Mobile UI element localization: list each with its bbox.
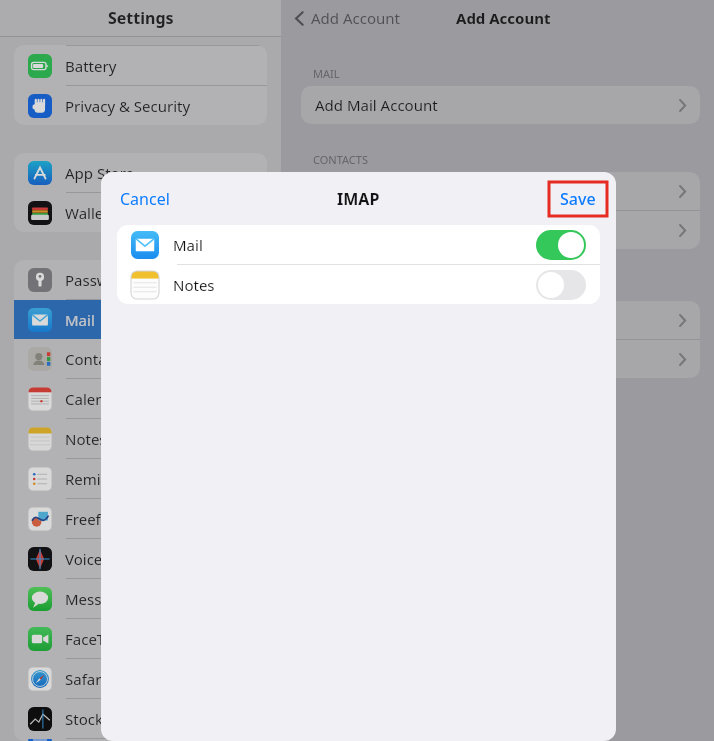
staticText: App Store xyxy=(65,163,135,183)
button[interactable]: Stocks xyxy=(14,699,267,738)
staticText: Passwords xyxy=(65,270,141,290)
button[interactable]: App Store xyxy=(14,153,267,192)
button[interactable]: Mail xyxy=(117,225,600,264)
button[interactable]: Cancel xyxy=(101,179,189,219)
staticText: Settings xyxy=(108,7,174,29)
button[interactable]: Mail xyxy=(14,300,267,339)
button[interactable] xyxy=(301,172,700,210)
button[interactable]: Back to Add Account xyxy=(281,2,406,34)
button[interactable]: Add Mail Account xyxy=(301,86,700,124)
staticText: Messages xyxy=(65,589,135,609)
staticText: Add Mail Account xyxy=(315,95,438,115)
button[interactable]: Reminders xyxy=(14,459,267,498)
staticText: Notes xyxy=(65,429,107,449)
staticText: Mail xyxy=(65,310,95,330)
staticText: Safari xyxy=(65,669,106,689)
button[interactable]: Mail on xyxy=(536,230,586,260)
button[interactable]: Safari xyxy=(14,659,267,698)
staticText: Battery xyxy=(65,56,117,76)
button[interactable]: Freeform xyxy=(14,499,267,538)
button[interactable]: Calendar xyxy=(14,379,267,418)
staticText: MAIL xyxy=(313,66,340,81)
button[interactable]: Passwords xyxy=(14,260,267,299)
staticText: Stocks xyxy=(65,709,111,729)
button[interactable] xyxy=(301,211,700,249)
staticText: Reminders xyxy=(65,469,142,489)
staticText: Contacts xyxy=(65,349,127,369)
staticText: Mail xyxy=(173,235,203,255)
button[interactable]: Translate xyxy=(14,739,267,741)
staticText: Wallet xyxy=(65,203,109,223)
staticText: Freeform xyxy=(65,509,131,529)
button[interactable]: Notes xyxy=(117,265,600,304)
button[interactable] xyxy=(301,301,700,339)
button[interactable]: Privacy & Security xyxy=(14,86,267,125)
staticText: CONTACTS xyxy=(313,152,368,167)
button[interactable]: Wallet xyxy=(14,193,267,232)
staticText: Translate xyxy=(65,739,130,741)
button[interactable]: Notes xyxy=(14,419,267,458)
button[interactable] xyxy=(301,340,700,378)
button[interactable]: Voice Memos xyxy=(14,539,267,578)
button[interactable]: FaceTime xyxy=(14,619,267,658)
button[interactable]: Battery xyxy=(14,46,267,85)
button[interactable]: Contacts xyxy=(14,339,267,378)
button[interactable]: Notes off xyxy=(536,270,586,300)
button[interactable]: Save xyxy=(549,182,607,216)
staticText: Notes xyxy=(173,275,215,295)
staticText: FaceTime xyxy=(65,629,132,649)
staticText: Cancel xyxy=(120,188,170,210)
staticText: Add Account xyxy=(311,8,400,28)
staticText: Privacy & Security xyxy=(65,96,191,116)
staticText: Calendar xyxy=(65,389,129,409)
staticText: Save xyxy=(560,188,596,210)
staticText: IMAP xyxy=(337,188,380,210)
staticText: Voice Memos xyxy=(65,549,159,569)
button[interactable]: Messages xyxy=(14,579,267,618)
staticText: Add Account xyxy=(456,8,551,28)
